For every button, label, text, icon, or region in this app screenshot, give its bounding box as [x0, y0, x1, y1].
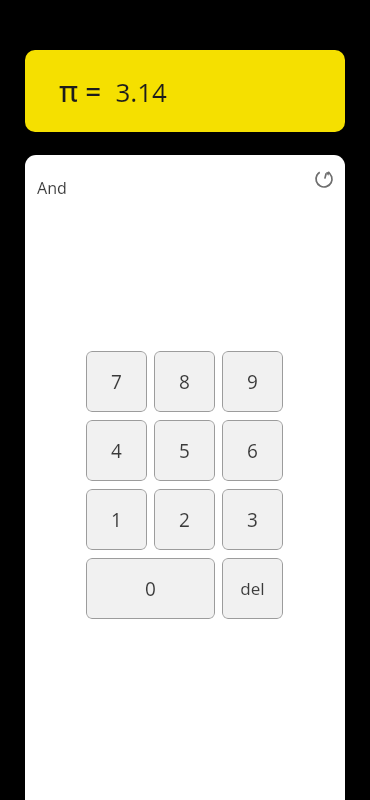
staticText: 0 — [145, 576, 156, 602]
button[interactable]: 9 — [222, 351, 283, 412]
button[interactable]: del — [222, 558, 283, 619]
button[interactable]: Reset — [308, 163, 340, 195]
staticText: 9 — [247, 369, 258, 395]
button[interactable]: π = 3.14 — [25, 50, 345, 132]
button[interactable]: 7 — [86, 351, 147, 412]
staticText: 5 — [179, 438, 190, 464]
button[interactable]: 3 — [222, 489, 283, 550]
button[interactable]: 0 — [86, 558, 215, 619]
staticText: 6 — [247, 438, 258, 464]
staticText: del — [240, 577, 265, 600]
staticText: And — [37, 177, 67, 199]
button[interactable]: 4 — [86, 420, 147, 481]
staticText: 1 — [111, 507, 122, 533]
button[interactable]: 6 — [222, 420, 283, 481]
button[interactable]: 1 — [86, 489, 147, 550]
staticText: 2 — [179, 507, 190, 533]
button[interactable]: 5 — [154, 420, 215, 481]
staticText: π = 3.14 — [59, 72, 167, 110]
button[interactable]: 8 — [154, 351, 215, 412]
button[interactable]: 2 — [154, 489, 215, 550]
staticText: 8 — [179, 369, 190, 395]
staticText: 4 — [111, 438, 122, 464]
staticText: 3 — [247, 507, 258, 533]
staticText: 7 — [111, 369, 122, 395]
